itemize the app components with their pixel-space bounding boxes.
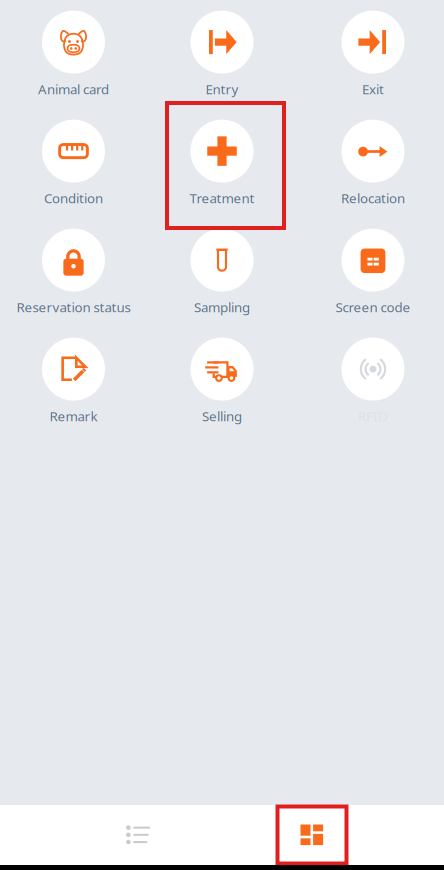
- staticText: Animal card: [38, 80, 109, 98]
- button[interactable]: List view: [78, 805, 198, 865]
- button[interactable]: Reservation status: [0, 229, 147, 316]
- button[interactable]: Treatment: [148, 120, 296, 207]
- staticText: Remark: [49, 407, 97, 425]
- staticText: Exit: [362, 80, 384, 98]
- button[interactable]: Animal card: [0, 11, 147, 98]
- button[interactable]: Entry: [148, 11, 296, 98]
- staticText: Reservation status: [16, 298, 130, 316]
- staticText: Entry: [205, 80, 238, 98]
- button[interactable]: Condition: [0, 120, 147, 207]
- button[interactable]: Grid view: [252, 805, 372, 865]
- staticText: Sampling: [194, 298, 250, 316]
- button[interactable]: Sampling: [148, 229, 296, 316]
- button[interactable]: Screen code: [299, 229, 444, 316]
- staticText: Selling: [202, 407, 242, 425]
- button[interactable]: Remark: [0, 338, 147, 425]
- staticText: Screen code: [335, 298, 410, 316]
- button[interactable]: Relocation: [299, 120, 444, 207]
- staticText: Treatment: [189, 189, 254, 207]
- button[interactable]: Selling: [148, 338, 296, 425]
- staticText: Relocation: [341, 189, 405, 207]
- staticText: Condition: [44, 189, 103, 207]
- button[interactable]: Exit: [299, 11, 444, 98]
- button[interactable]: RFID: [299, 338, 444, 425]
